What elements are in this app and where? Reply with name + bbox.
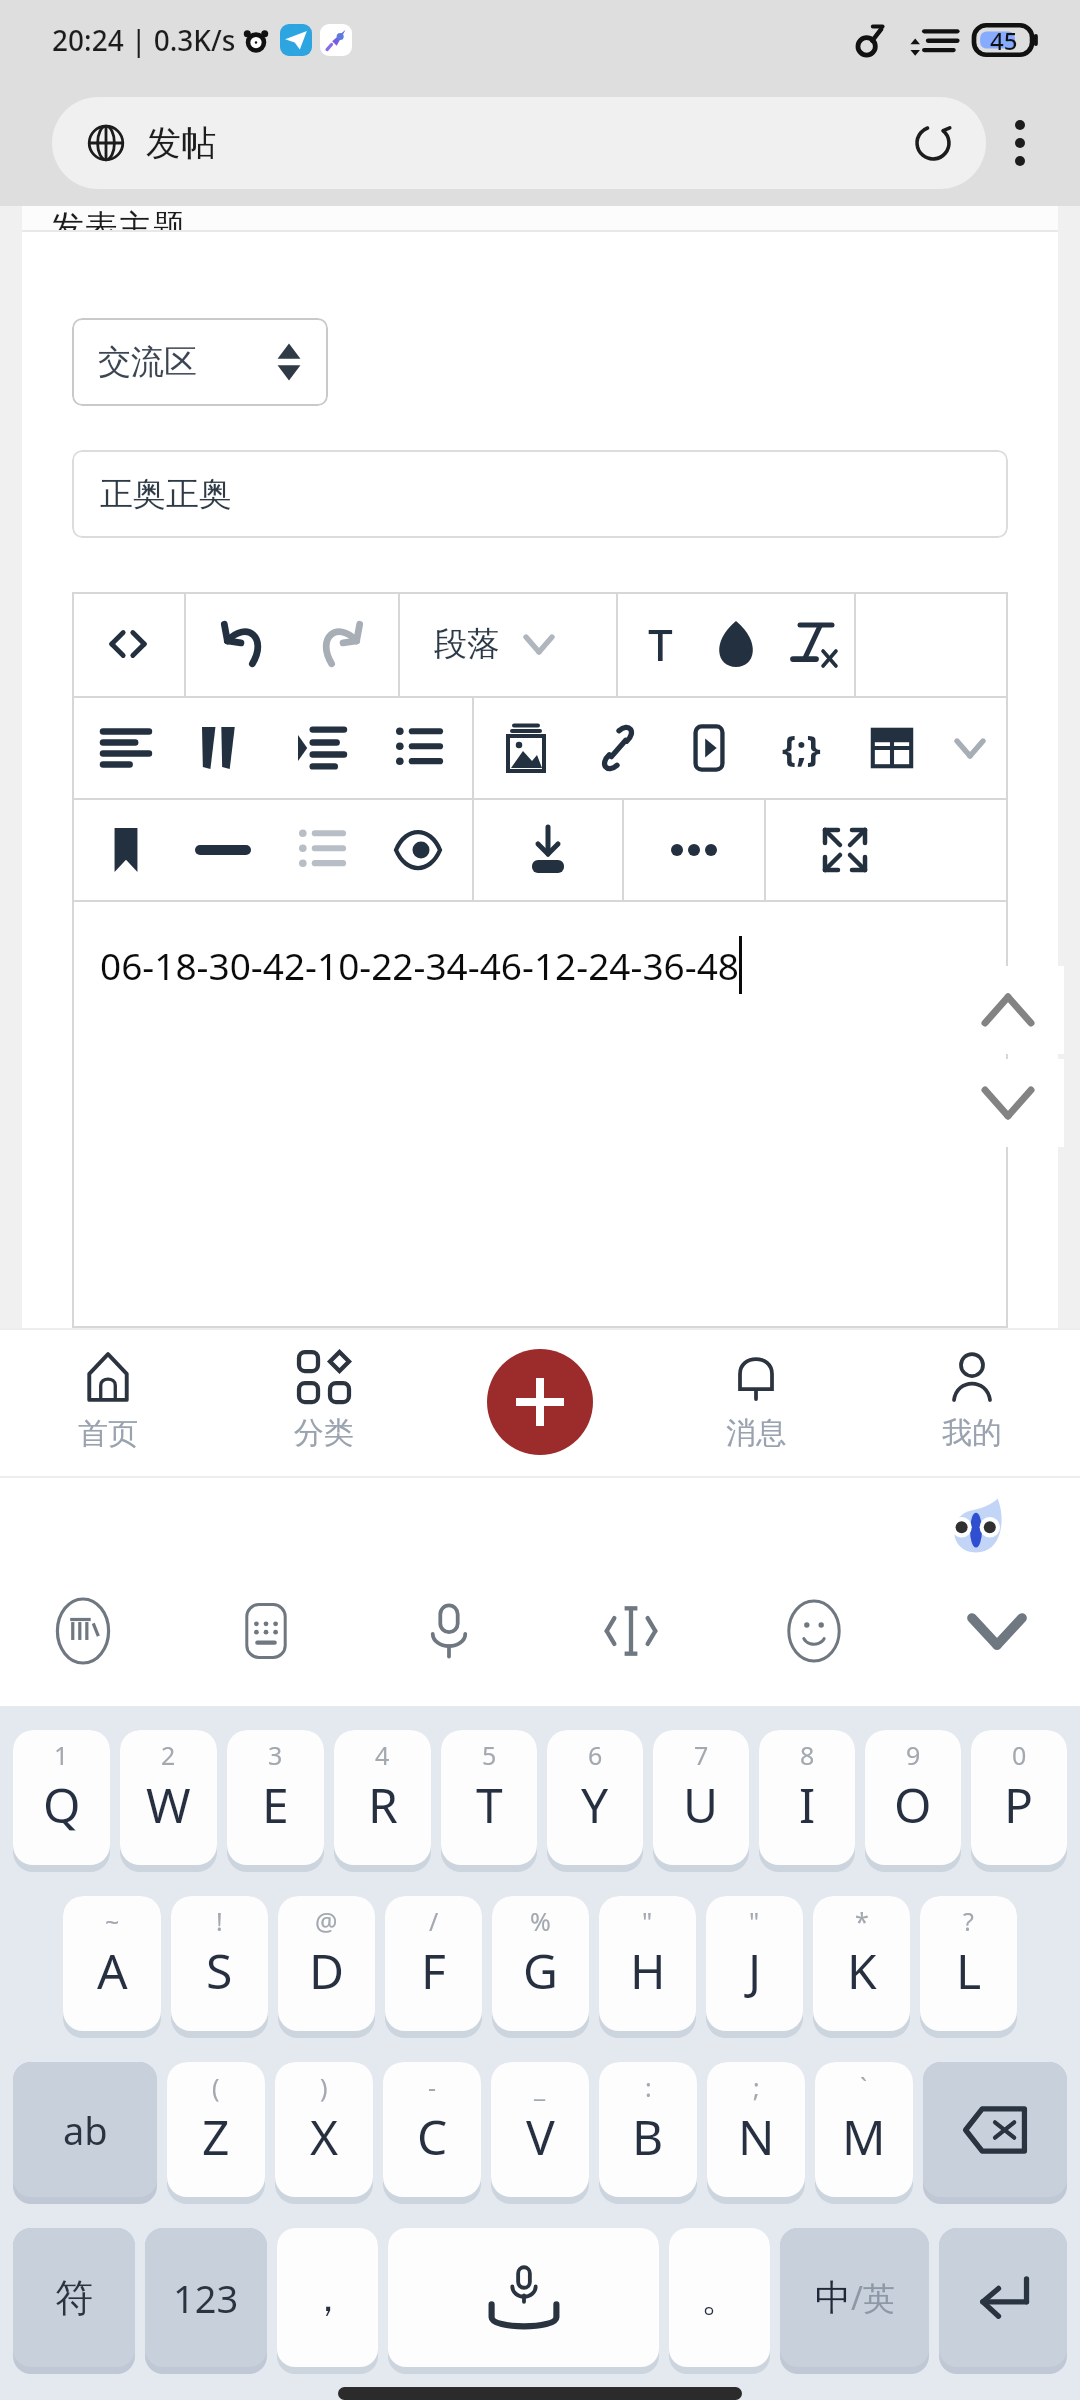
staticText: 7 — [694, 1738, 709, 1772]
button[interactable]: @ — [278, 1896, 375, 2031]
button[interactable]: Save draft — [505, 807, 591, 893]
button[interactable]: " — [706, 1896, 803, 2031]
button[interactable]: 2 — [120, 1730, 217, 1865]
button[interactable]: _ — [491, 2062, 589, 2197]
button[interactable]: Enter — [939, 2228, 1067, 2367]
button[interactable]: 交流区 — [72, 318, 328, 406]
button[interactable]: Source code — [85, 601, 171, 687]
button[interactable]: 。 — [669, 2228, 770, 2367]
staticText: S — [206, 1938, 233, 2003]
button[interactable]: 段落 — [400, 592, 616, 696]
staticText: W — [146, 1772, 191, 1837]
button[interactable]: / — [385, 1896, 482, 2031]
button[interactable]: 发帖 — [52, 97, 986, 189]
staticText: 9 — [906, 1738, 921, 1772]
staticText: 正奥正奥 — [100, 473, 232, 515]
staticText: ! — [216, 1904, 223, 1938]
button[interactable]: ` — [815, 2062, 913, 2197]
staticText: 段落 — [434, 623, 500, 665]
button[interactable]: 3 — [227, 1730, 324, 1865]
button[interactable]: " — [599, 1896, 696, 2031]
button[interactable]: Refresh — [902, 112, 964, 174]
button[interactable]: Input method — [34, 1582, 132, 1680]
button[interactable]: 1 — [13, 1730, 110, 1865]
button[interactable]: ) — [275, 2062, 373, 2197]
button[interactable]: * — [813, 1896, 910, 2031]
staticText: @ — [315, 1904, 338, 1938]
button[interactable]: Redo — [301, 604, 381, 684]
staticText: - — [428, 2070, 437, 2104]
staticText: E — [262, 1772, 289, 1837]
button[interactable]: Edit cursor — [582, 1582, 680, 1680]
button[interactable]: % — [492, 1896, 589, 2031]
staticText: 发帖 — [146, 121, 216, 165]
button[interactable]: Align left — [83, 705, 169, 791]
staticText: 符 — [55, 2274, 93, 2322]
button[interactable]: 首页 — [0, 1328, 216, 1476]
button[interactable]: Scroll down — [952, 1059, 1064, 1147]
button[interactable]: 5 — [441, 1730, 537, 1865]
button[interactable]: Space — [388, 2228, 659, 2367]
staticText: 发表主题 — [50, 206, 186, 230]
button[interactable]: Fullscreen — [802, 807, 888, 893]
button[interactable]: 9 — [865, 1730, 961, 1865]
staticText: L — [956, 1938, 982, 2003]
button[interactable]: Insert table — [853, 709, 931, 787]
staticText: J — [748, 1938, 762, 2003]
staticText: 06-18-30-42-10-22-34-46-12-24-36-48 — [100, 940, 739, 990]
button[interactable]: Indent — [278, 705, 364, 791]
button[interactable]: Text color — [701, 609, 771, 679]
button[interactable]: ? — [920, 1896, 1017, 2031]
button[interactable]: ， — [277, 2228, 378, 2367]
button[interactable]: Insert link — [579, 709, 657, 787]
button[interactable]: More options — [986, 97, 1054, 189]
button[interactable]: Outline — [278, 807, 364, 893]
button[interactable]: 正奥正奥 — [72, 450, 1008, 538]
button[interactable]: ( — [167, 2062, 265, 2197]
button[interactable]: Voice input — [400, 1582, 498, 1680]
staticText: ? — [963, 1904, 974, 1938]
button[interactable]: Hide keyboard — [948, 1582, 1046, 1680]
button[interactable]: Clear format — [778, 609, 848, 679]
button[interactable]: Insert code — [762, 709, 840, 787]
button[interactable]: Create post — [487, 1349, 593, 1455]
button[interactable]: 消息 — [648, 1328, 864, 1476]
button[interactable]: 中 — [780, 2228, 929, 2367]
staticText: N — [738, 2104, 775, 2169]
button[interactable]: 我的 — [864, 1328, 1080, 1476]
button[interactable]: 分类 — [216, 1328, 432, 1476]
button[interactable]: ; — [707, 2062, 805, 2197]
button[interactable]: Insert video — [670, 709, 748, 787]
button[interactable]: Text size — [625, 609, 695, 679]
staticText: * — [855, 1904, 869, 1938]
button[interactable]: Quote — [180, 705, 266, 791]
button[interactable]: : — [599, 2062, 697, 2197]
button[interactable]: Undo — [203, 604, 283, 684]
staticText: {;} — [782, 724, 821, 773]
button[interactable]: 0 — [971, 1730, 1067, 1865]
button[interactable]: More tools — [651, 807, 737, 893]
button[interactable]: 符 — [13, 2228, 135, 2367]
button[interactable]: Horizontal rule — [180, 807, 266, 893]
staticText: ) — [320, 2070, 328, 2104]
button[interactable]: 4 — [334, 1730, 431, 1865]
button[interactable]: 123 — [145, 2228, 267, 2367]
staticText: F — [421, 1938, 446, 2003]
button[interactable]: Bookmark — [83, 807, 169, 893]
button[interactable]: ! — [171, 1896, 268, 2031]
button[interactable]: ab — [13, 2062, 157, 2197]
button[interactable]: 6 — [547, 1730, 643, 1865]
staticText: O — [894, 1772, 932, 1837]
button[interactable]: More formatting — [945, 723, 995, 773]
button[interactable]: - — [383, 2062, 481, 2197]
button[interactable]: 7 — [653, 1730, 749, 1865]
button[interactable]: Preview — [375, 807, 461, 893]
button[interactable]: Insert image — [487, 709, 565, 787]
button[interactable]: Bullet list — [375, 705, 461, 791]
button[interactable]: Emoji — [765, 1582, 863, 1680]
button[interactable]: Keyboard layout — [217, 1582, 315, 1680]
button[interactable]: ~ — [63, 1896, 161, 2031]
button[interactable]: Backspace — [923, 2062, 1067, 2197]
button[interactable]: Scroll up — [952, 966, 1064, 1054]
button[interactable]: 8 — [759, 1730, 855, 1865]
